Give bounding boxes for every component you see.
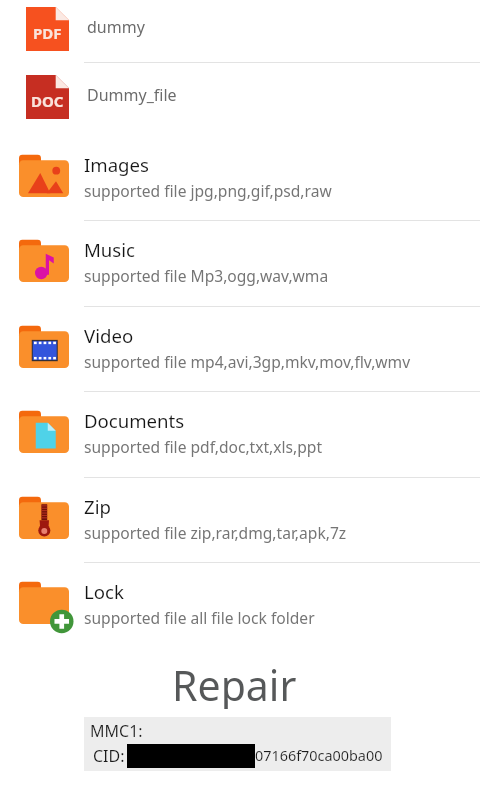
staticText: 07166f70ca00ba00 [255, 746, 383, 766]
staticText: supported file pdf,doc,txt,xls,ppt [84, 436, 323, 457]
button[interactable]: PDF [0, 0, 480, 62]
staticText: supported file mp4,avi,3gp,mkv,mov,flv,w… [84, 351, 411, 372]
staticText: PDF [33, 23, 62, 43]
staticText: supported file all file lock folder [84, 607, 315, 628]
staticText: supported file jpg,png,gif,psd,raw [84, 180, 332, 201]
staticText: Dummy_file [87, 84, 177, 106]
staticText: DOC [31, 91, 64, 111]
button[interactable]: Images [0, 135, 480, 220]
staticText: supported file Mp3,ogg,wav,wma [84, 265, 329, 286]
button[interactable]: Music [0, 220, 480, 305]
button[interactable]: Zip [0, 477, 480, 562]
button[interactable]: Lock [0, 562, 480, 647]
staticText: Images [84, 152, 149, 177]
staticText: Repair [172, 657, 297, 709]
button[interactable]: Documents [0, 391, 480, 476]
staticText: CID: [93, 745, 125, 767]
staticText: dummy [87, 16, 145, 38]
staticText: Documents [84, 408, 185, 433]
staticText: Video [84, 323, 134, 348]
staticText: MMC1: [90, 720, 143, 742]
staticText: Music [84, 237, 135, 262]
button[interactable]: Video [0, 306, 480, 391]
button[interactable]: DOC [0, 63, 480, 135]
staticText: supported file zip,rar,dmg,tar,apk,7z [84, 522, 347, 543]
staticText: Zip [84, 494, 111, 519]
staticText: Lock [84, 579, 124, 604]
